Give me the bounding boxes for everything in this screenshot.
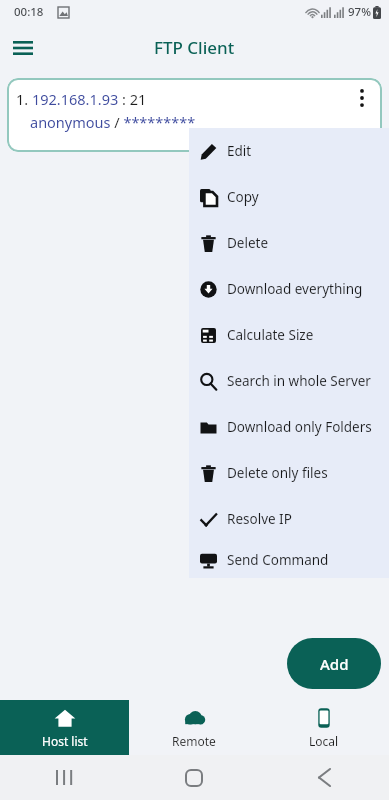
button[interactable]: Resolve IP bbox=[189, 496, 389, 542]
staticText: Download only Folders bbox=[227, 418, 372, 436]
staticText: FTP Client bbox=[154, 36, 235, 59]
staticText: Delete only files bbox=[227, 464, 328, 482]
staticText: Host list bbox=[42, 733, 88, 749]
staticText: Download everything bbox=[227, 280, 363, 298]
button[interactable]: More options bbox=[345, 81, 379, 115]
button[interactable]: Download everything bbox=[189, 266, 389, 312]
staticText: Add bbox=[320, 654, 349, 674]
button[interactable]: Search in whole Server bbox=[189, 358, 389, 404]
staticText: Edit bbox=[227, 142, 252, 160]
button[interactable]: Copy bbox=[189, 174, 389, 220]
button[interactable]: Delete bbox=[189, 220, 389, 266]
staticText: 1. 192.168.1.93 : 21 bbox=[16, 89, 147, 109]
staticText: Copy bbox=[227, 188, 259, 206]
button[interactable]: Local bbox=[259, 700, 389, 755]
staticText: anonymous / ********* bbox=[30, 112, 196, 132]
staticText: Remote bbox=[172, 733, 216, 749]
button[interactable]: Open navigation menu bbox=[4, 29, 42, 67]
button[interactable]: Edit bbox=[189, 128, 389, 174]
staticText: Local bbox=[309, 733, 339, 749]
button[interactable]: Remote bbox=[129, 700, 259, 755]
staticText: Search in whole Server bbox=[227, 372, 371, 390]
staticText: Send Command bbox=[227, 551, 329, 569]
button[interactable]: Add bbox=[287, 638, 381, 689]
staticText: Resolve IP bbox=[227, 510, 292, 528]
staticText: Calculate Size bbox=[227, 326, 314, 344]
staticText: 00:18 bbox=[14, 4, 44, 20]
button[interactable]: Calculate Size bbox=[189, 312, 389, 358]
button[interactable]: Host list bbox=[0, 700, 129, 755]
button[interactable]: Download only Folders bbox=[189, 404, 389, 450]
button[interactable]: 1. 192.168.1.93 : 21 bbox=[7, 78, 382, 152]
button[interactable]: Delete only files bbox=[189, 450, 389, 496]
button[interactable]: Send Command bbox=[189, 542, 389, 578]
staticText: 97% bbox=[348, 4, 371, 20]
staticText: Delete bbox=[227, 234, 269, 252]
